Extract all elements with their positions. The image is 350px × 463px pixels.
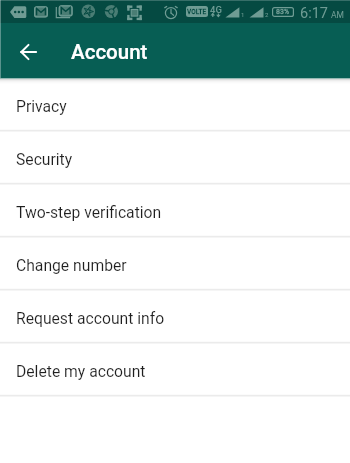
staticText: VOLTE [187,8,207,16]
staticText: 6:17 [300,5,328,22]
button[interactable]: Privacy [0,78,350,131]
button[interactable]: Request account info [0,290,350,343]
button[interactable]: Security [0,131,350,184]
staticText: Delete my account [16,362,146,380]
button[interactable]: Back [12,35,44,67]
staticText: 1 [241,11,245,18]
staticText: 83% [276,8,290,16]
staticText: Two-step verification [16,203,162,221]
staticText: Account [71,40,148,64]
button[interactable]: Change number [0,237,350,290]
staticText: AM [331,10,344,20]
staticText: Request account info [16,309,165,327]
staticText: 4G [210,4,222,15]
button[interactable]: Delete my account [0,343,350,396]
staticText: Security [16,150,73,168]
staticText: Privacy [16,97,67,115]
staticText: 2 [265,11,269,18]
staticText: Change number [16,256,127,274]
button[interactable]: Two-step verification [0,184,350,237]
